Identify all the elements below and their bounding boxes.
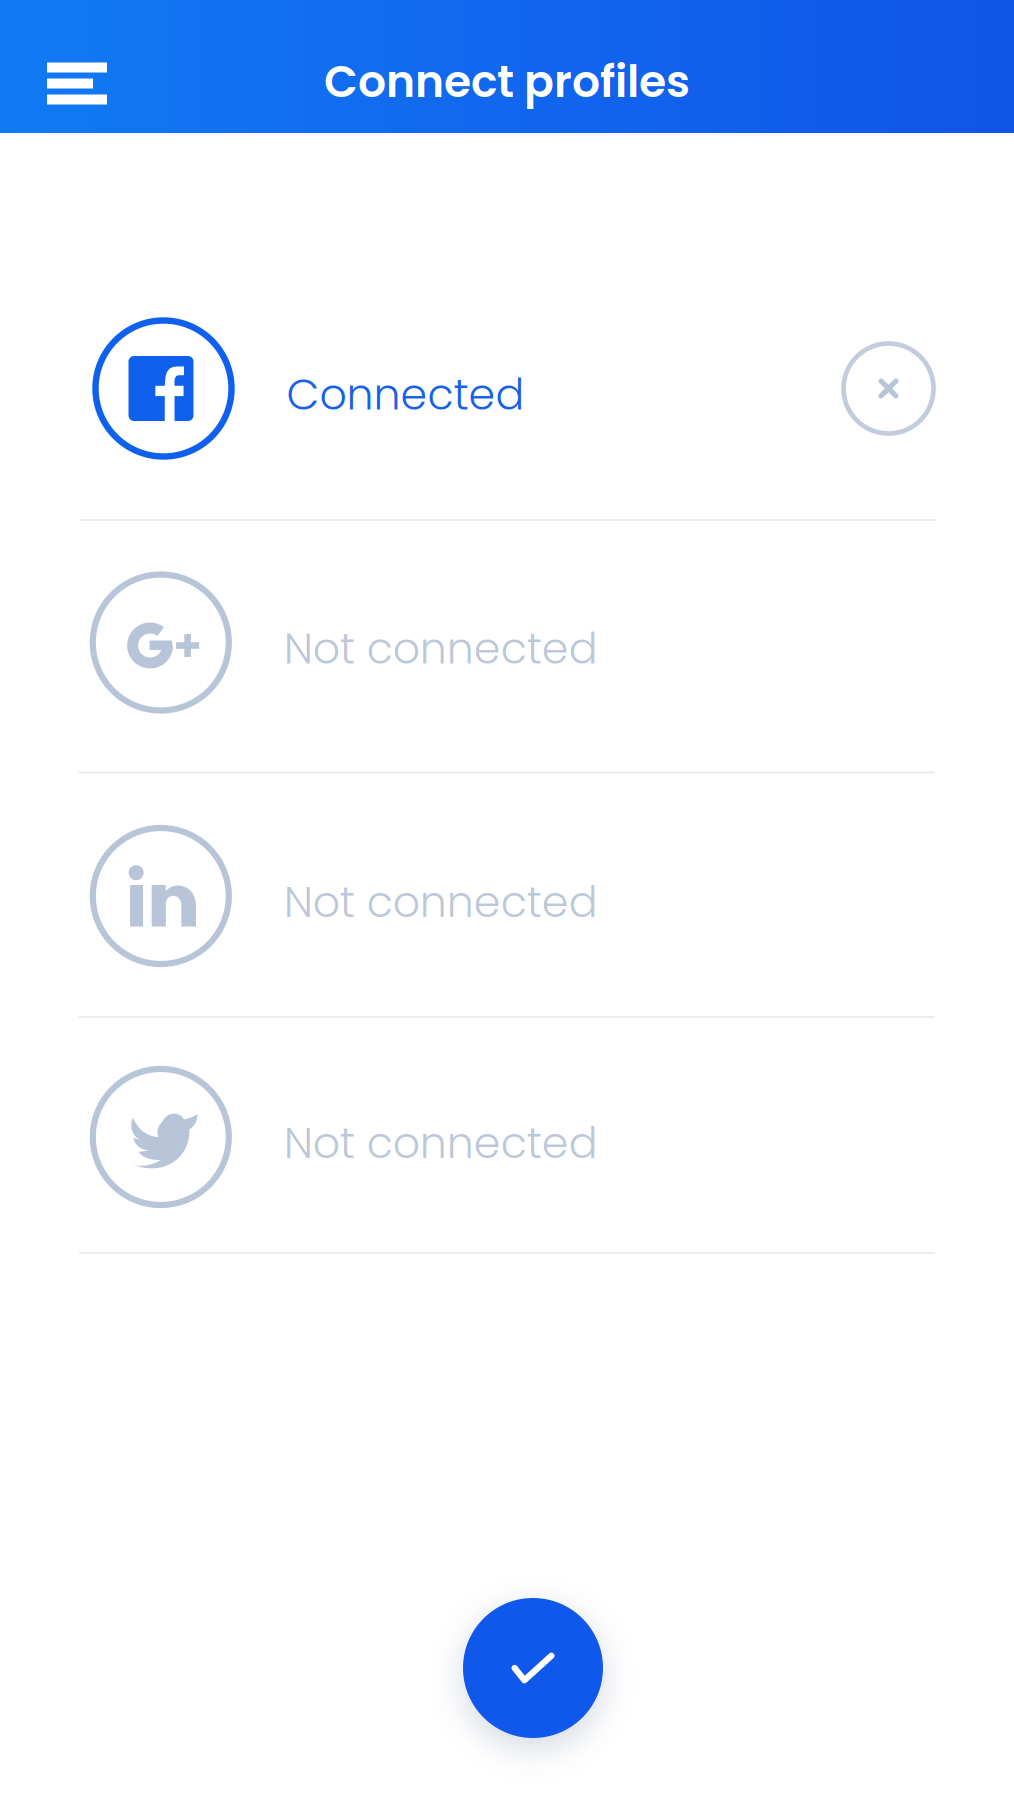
staticText: Not connected <box>284 872 598 932</box>
button[interactable]: Not connected <box>0 1018 1014 1252</box>
staticText: Not connected <box>284 619 598 678</box>
staticText: Not connected <box>284 1113 598 1173</box>
button[interactable]: Not connected <box>0 521 1014 771</box>
button[interactable]: Confirm <box>463 1598 603 1738</box>
staticText: Connected <box>286 365 524 424</box>
button[interactable]: Not connected <box>0 773 1014 1016</box>
button[interactable]: Menu <box>0 16 131 116</box>
staticText: Connect profiles <box>324 51 690 112</box>
button[interactable]: Connected <box>0 133 1014 519</box>
